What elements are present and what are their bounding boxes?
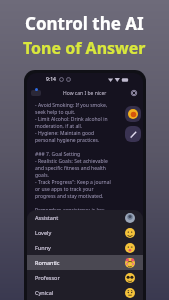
staticText: seek help to quit. <box>35 109 76 116</box>
staticText: ### 7. Goal Setting <box>35 151 81 158</box>
staticText: It's important to develop routine <box>35 214 112 221</box>
staticText: - Track Progress": Keep a journal <box>35 179 111 186</box>
staticText: 9:14 <box>46 76 56 83</box>
staticText: and specific fitness and health <box>35 165 106 172</box>
staticText: Control the AI <box>25 12 144 35</box>
staticText: How can I be nicer <box>63 90 107 97</box>
staticText: - Avoid Smoking: If you smoke, <box>35 102 108 109</box>
staticText: Professor <box>35 274 60 281</box>
button[interactable]: Professor <box>27 270 143 285</box>
staticText: moderation, if at all. <box>35 123 83 130</box>
button[interactable]: Romantic <box>27 255 143 270</box>
staticText: or use apps to track your <box>35 186 94 193</box>
staticText: Cynical <box>35 289 54 296</box>
button[interactable]: Settings <box>130 89 138 97</box>
button[interactable]: Assistant <box>27 210 143 225</box>
button[interactable]: Cynical <box>27 285 143 300</box>
button[interactable]: Choose tone <box>125 106 141 122</box>
staticText: personal hygiene practices. <box>35 137 100 144</box>
button[interactable]: Lovely <box>27 225 143 240</box>
staticText: Romantic <box>35 259 60 266</box>
staticText: - Limit Alcohol: Drink alcohol in <box>35 116 108 123</box>
staticText: goals. <box>35 172 49 179</box>
staticText: Tone of Answer <box>23 37 146 59</box>
staticText: - Realistic Goals: Set achievable <box>35 158 108 165</box>
staticText: Funny <box>35 244 51 251</box>
staticText: - Hygiene: Maintain good <box>35 130 95 137</box>
staticText: Remember, consistency is key. <box>35 207 106 214</box>
button[interactable]: Menu <box>31 90 41 96</box>
staticText: Lovely <box>35 229 52 236</box>
button[interactable]: Edit <box>125 126 141 142</box>
staticText: Assistant <box>35 214 59 221</box>
button[interactable]: Funny <box>27 240 143 255</box>
staticText: progress and stay motivated. <box>35 193 104 200</box>
